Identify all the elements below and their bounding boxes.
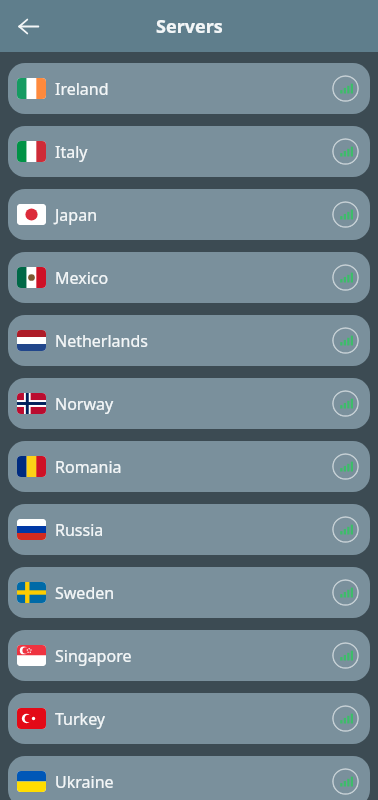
button[interactable]: Signal strength [332, 327, 359, 354]
staticText: Japan [55, 204, 98, 226]
staticText: Singapore [55, 645, 132, 667]
button[interactable]: Signal strength [332, 138, 359, 165]
button[interactable]: Signal strength [332, 75, 359, 102]
button[interactable]: Back [8, 6, 48, 46]
button[interactable]: Mexico [8, 252, 370, 303]
button[interactable]: Signal strength [332, 453, 359, 480]
staticText: Ukraine [55, 771, 114, 793]
button[interactable]: Netherlands [8, 315, 370, 366]
button[interactable]: Ireland [8, 63, 370, 114]
button[interactable]: Signal strength [332, 264, 359, 291]
button[interactable]: Signal strength [332, 201, 359, 228]
button[interactable]: Romania [8, 441, 370, 492]
staticText: Russia [55, 519, 104, 541]
button[interactable]: Italy [8, 126, 370, 177]
button[interactable]: Norway [8, 378, 370, 429]
staticText: Ireland [55, 78, 109, 100]
staticText: Sweden [55, 582, 115, 604]
button[interactable]: Japan [8, 189, 370, 240]
staticText: Servers [156, 14, 223, 39]
button[interactable]: Signal strength [332, 516, 359, 543]
button[interactable]: Ukraine [8, 756, 370, 800]
button[interactable]: Singapore [8, 630, 370, 681]
button[interactable]: Signal strength [332, 579, 359, 606]
button[interactable]: Sweden [8, 567, 370, 618]
staticText: Turkey [55, 708, 106, 730]
staticText: Italy [55, 141, 88, 163]
staticText: Romania [55, 456, 122, 478]
button[interactable]: Russia [8, 504, 370, 555]
staticText: Norway [55, 393, 114, 415]
staticText: Mexico [55, 267, 109, 289]
button[interactable]: Signal strength [332, 705, 359, 732]
button[interactable]: Turkey [8, 693, 370, 744]
button[interactable]: Signal strength [332, 642, 359, 669]
button[interactable]: Signal strength [332, 390, 359, 417]
button[interactable]: Signal strength [332, 768, 359, 795]
staticText: Netherlands [55, 330, 148, 352]
